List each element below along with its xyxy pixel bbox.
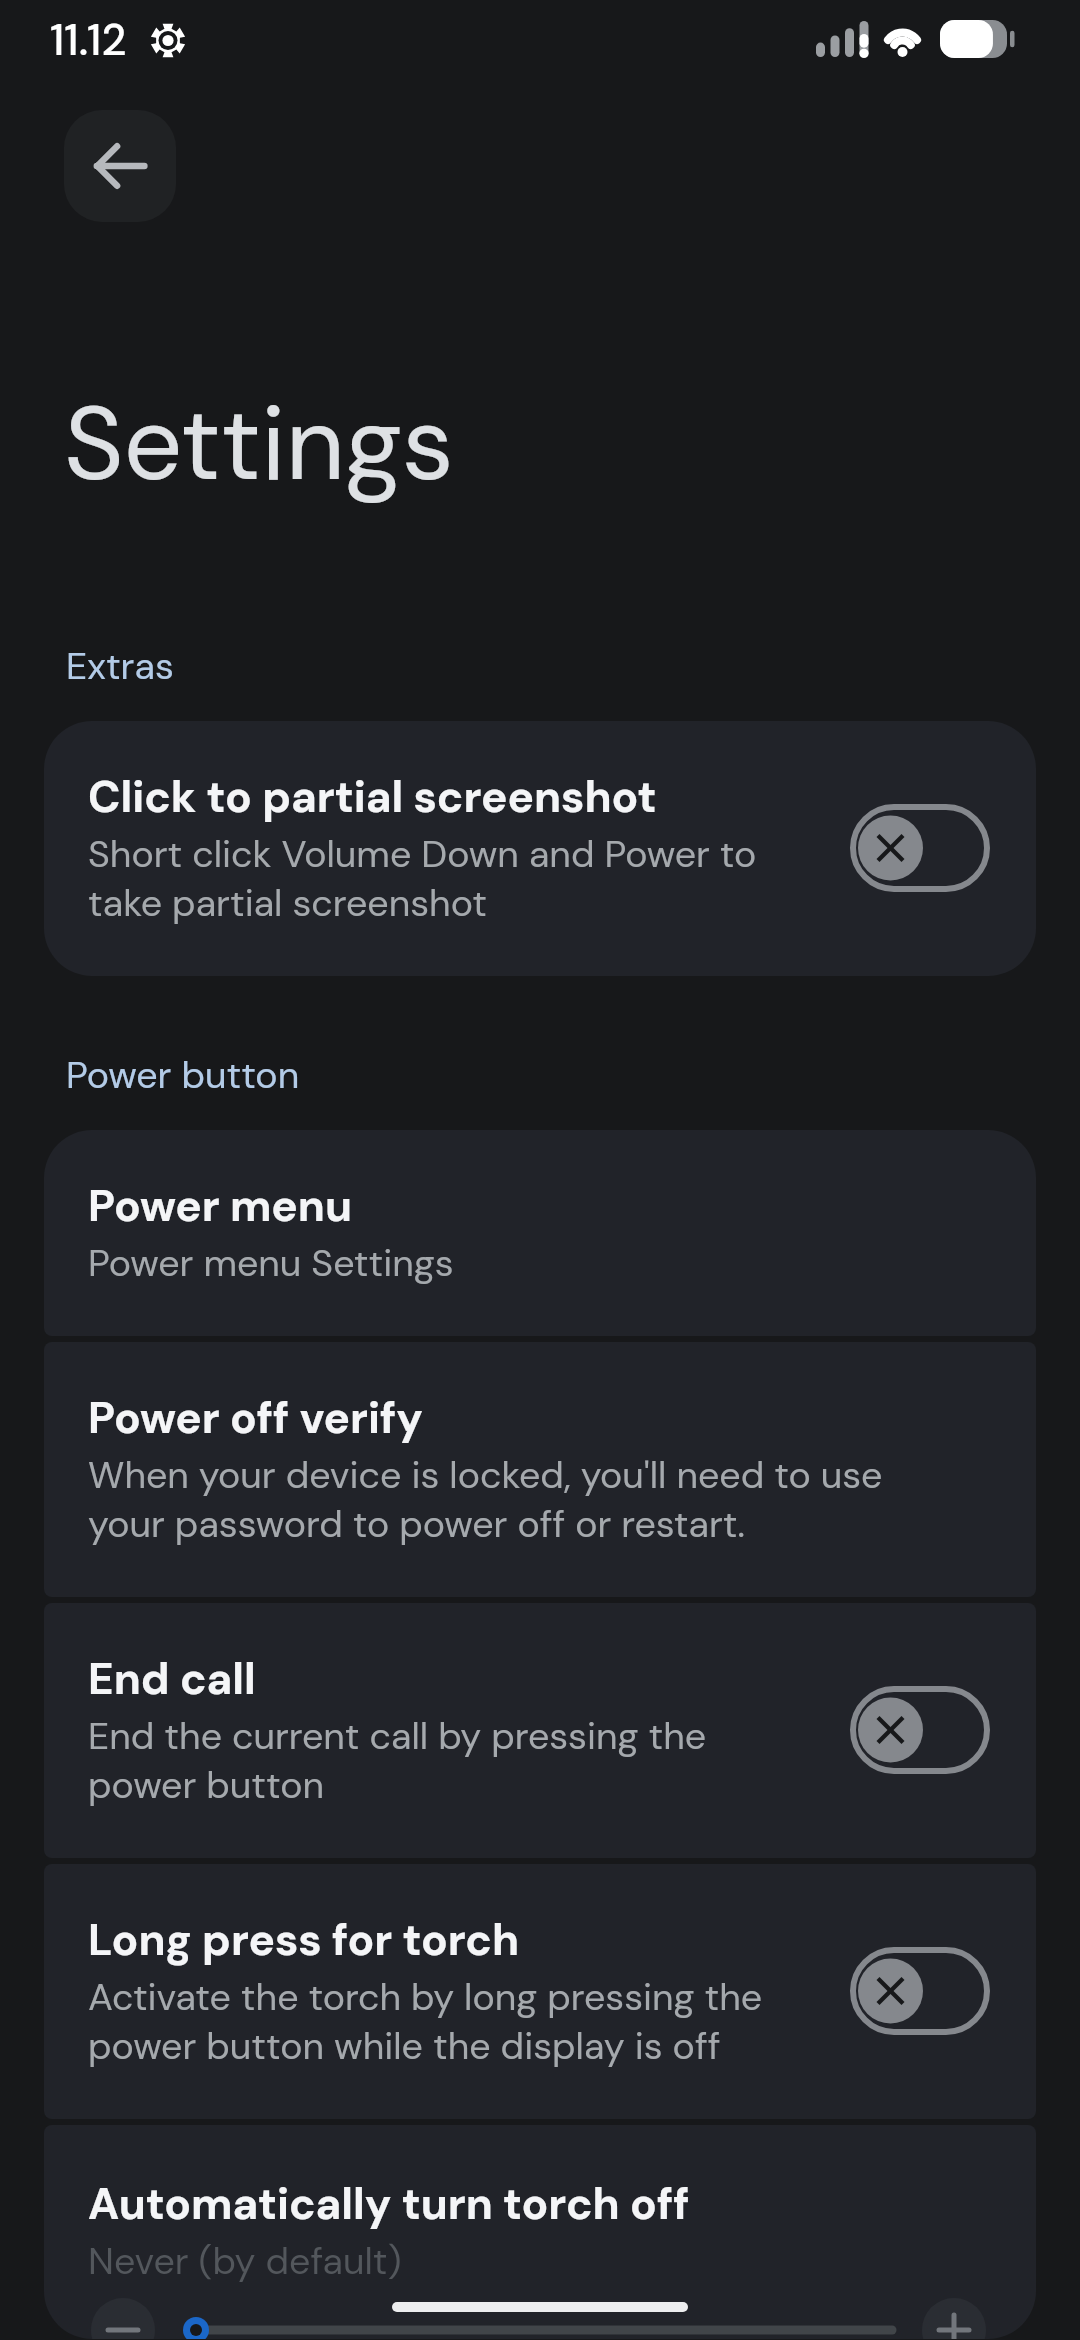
button[interactable]: Increase	[922, 2298, 986, 2339]
button[interactable]: Toggle off	[850, 1947, 990, 2035]
staticText: Never (by default)	[88, 2237, 402, 2286]
button[interactable]: Back	[64, 110, 176, 222]
staticText: Power off verify	[88, 1389, 423, 1446]
button[interactable]: Long press for torch	[44, 1864, 1036, 2119]
staticText: Activate the torch by long pressing the …	[88, 1973, 810, 2071]
staticText: Short click Volume Down and Power to tak…	[88, 830, 810, 928]
staticText: Long press for torch	[88, 1911, 520, 1968]
button[interactable]: Decrease	[91, 2298, 155, 2339]
button[interactable]: End call	[44, 1603, 1036, 1858]
button[interactable]: Automatically turn torch off	[44, 2125, 1036, 2339]
button[interactable]: Toggle off	[850, 1686, 990, 1774]
staticText: Automatically turn torch off	[88, 2175, 690, 2232]
staticText: End the current call by pressing the pow…	[88, 1712, 810, 1810]
staticText: End call	[88, 1650, 256, 1707]
staticText: Power menu	[88, 1177, 353, 1234]
button[interactable]: Toggle off	[850, 804, 990, 892]
staticText: Power button	[66, 1051, 300, 1100]
button[interactable]: Click to partial screenshot	[44, 721, 1036, 976]
button[interactable]: Power off verify	[44, 1342, 1036, 1597]
staticText: Power menu Settings	[88, 1239, 454, 1288]
button[interactable]: Power menu	[44, 1130, 1036, 1336]
staticText: Click to partial screenshot	[88, 768, 657, 825]
staticText: Extras	[66, 642, 174, 691]
staticText: When your device is locked, you'll need …	[88, 1451, 936, 1549]
staticText: Settings	[64, 377, 454, 511]
staticText: 11.12	[50, 11, 127, 68]
